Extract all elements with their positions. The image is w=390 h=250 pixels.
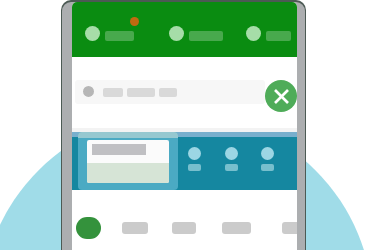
button[interactable] <box>176 147 213 171</box>
button[interactable] <box>85 26 134 48</box>
button[interactable] <box>249 147 285 171</box>
button[interactable] <box>78 132 178 190</box>
button[interactable] <box>172 222 196 234</box>
button[interactable] <box>72 137 297 190</box>
button[interactable] <box>222 222 251 234</box>
button[interactable] <box>282 222 297 234</box>
button[interactable]: Scan code <box>265 80 297 112</box>
button[interactable] <box>122 222 148 234</box>
button[interactable] <box>246 26 291 48</box>
button[interactable] <box>213 147 249 171</box>
button[interactable]: Home <box>76 217 101 239</box>
button[interactable] <box>169 26 223 48</box>
button[interactable] <box>75 80 265 104</box>
